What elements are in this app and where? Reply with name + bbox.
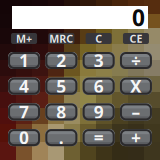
staticText: 8 [56, 100, 66, 123]
staticText: – [131, 100, 140, 123]
staticText: CE [129, 31, 142, 46]
button[interactable]: 0 [8, 129, 40, 146]
staticText: X [130, 75, 142, 98]
staticText: 3 [94, 49, 104, 72]
button[interactable]: 2 [45, 52, 77, 69]
button[interactable]: CE [120, 33, 152, 44]
button[interactable]: 1 [8, 52, 40, 69]
staticText: M+ [16, 31, 32, 46]
staticText: = [94, 126, 104, 149]
staticText: ÷ [131, 49, 141, 72]
button[interactable]: = [83, 129, 115, 146]
button[interactable]: – [120, 103, 152, 120]
button[interactable]: X [120, 78, 152, 95]
staticText: 4 [19, 75, 29, 98]
staticText: MRC [49, 31, 73, 46]
button[interactable]: 8 [45, 103, 77, 120]
staticText: C [95, 31, 102, 46]
button[interactable]: 6 [83, 78, 115, 95]
button[interactable]: C [83, 33, 115, 44]
button[interactable]: M+ [8, 33, 40, 44]
staticText: 7 [19, 100, 29, 123]
staticText: 1 [19, 49, 29, 72]
staticText: 5 [56, 75, 66, 98]
button[interactable]: . [45, 129, 77, 146]
button[interactable]: ÷ [120, 52, 152, 69]
button[interactable]: 4 [8, 78, 40, 95]
button[interactable]: 5 [45, 78, 77, 95]
staticText: + [131, 126, 141, 149]
staticText: 9 [94, 100, 104, 123]
button[interactable]: 7 [8, 103, 40, 120]
staticText: 2 [56, 49, 66, 72]
staticText: 0 [132, 2, 145, 32]
button[interactable]: 3 [83, 52, 115, 69]
button[interactable]: MRC [45, 33, 77, 44]
staticText: 6 [94, 75, 104, 98]
staticText: 0 [19, 126, 29, 149]
button[interactable]: 9 [83, 103, 115, 120]
button[interactable]: + [120, 129, 152, 146]
staticText: . [59, 126, 64, 149]
